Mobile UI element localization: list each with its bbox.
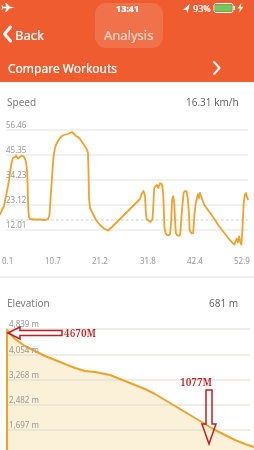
- staticText: 45.35: [6, 144, 27, 155]
- staticText: 681 m: [209, 296, 239, 310]
- staticText: 3,268 m: [9, 369, 40, 380]
- staticText: 2,482 m: [9, 394, 40, 405]
- staticText: Back: [15, 26, 44, 44]
- button[interactable]: Back: [0, 20, 60, 48]
- staticText: 52.9: [234, 255, 250, 266]
- staticText: 42.4: [187, 255, 203, 266]
- staticText: 4,054 m: [9, 344, 40, 355]
- staticText: 12.01: [6, 219, 27, 230]
- staticText: 21.2: [92, 255, 108, 266]
- staticText: Compare Workouts: [8, 60, 118, 76]
- button[interactable]: Compare Workouts: [0, 50, 254, 82]
- staticText: 16.31 km/h: [186, 95, 239, 109]
- staticText: 34.23: [6, 169, 27, 180]
- staticText: 31.8: [140, 255, 156, 266]
- staticText: 56.46: [6, 119, 27, 130]
- staticText: Elevation: [7, 296, 50, 310]
- staticText: 10.7: [45, 255, 61, 266]
- staticText: Speed: [7, 95, 37, 109]
- staticText: 23.12: [6, 194, 27, 205]
- staticText: 93%: [193, 2, 211, 14]
- staticText: Analysis: [104, 26, 154, 44]
- staticText: 1077M: [180, 375, 213, 389]
- staticText: 0.1: [2, 255, 14, 266]
- staticText: 1,697 m: [9, 419, 40, 430]
- staticText: 13:41: [116, 2, 140, 14]
- staticText: 4670M: [64, 326, 97, 340]
- staticText: 4,839 m: [9, 318, 40, 329]
